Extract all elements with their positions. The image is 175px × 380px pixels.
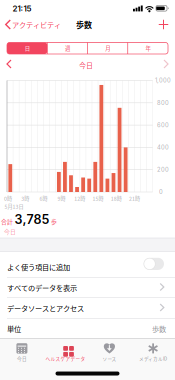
- staticText: 600: [157, 122, 169, 129]
- staticText: データソースとアクセス: [7, 303, 84, 313]
- button[interactable]: よく使う項目に追加: [0, 254, 175, 280]
- staticText: 0: [159, 188, 163, 195]
- button[interactable]: ヘルスケアデータ: [40, 340, 92, 364]
- staticText: 400: [157, 144, 169, 151]
- staticText: 18時: [111, 195, 122, 202]
- staticText: ソース: [102, 355, 116, 362]
- button[interactable]: メディカルID: [127, 340, 175, 364]
- button[interactable]: 単位: [0, 318, 175, 339]
- staticText: 6時: [39, 195, 47, 202]
- staticText: メディカルID: [139, 355, 167, 362]
- staticText: 歩数: [152, 323, 166, 334]
- staticText: よく使う項目に追加: [7, 262, 70, 272]
- staticText: 年: [145, 44, 150, 52]
- button[interactable]: ソース: [83, 340, 135, 364]
- staticText: 0時: [4, 195, 12, 202]
- staticText: 3時: [21, 195, 29, 202]
- staticText: 月: [105, 44, 110, 52]
- staticText: 21時: [129, 195, 140, 202]
- button[interactable]: 日: [7, 42, 47, 54]
- staticText: 200: [157, 166, 169, 173]
- staticText: 12時: [74, 195, 85, 202]
- staticText: 今日: [79, 60, 93, 70]
- staticText: ヘルスケアデータ: [46, 355, 86, 362]
- staticText: 合計: [1, 217, 13, 226]
- staticText: 今日: [17, 355, 27, 362]
- staticText: 21:15: [12, 4, 31, 13]
- staticText: すべてのデータを表示: [7, 282, 77, 293]
- button[interactable]: データソースとアクセス: [0, 298, 175, 318]
- staticText: 歩数: [76, 19, 92, 30]
- staticText: アクティビティ: [12, 19, 61, 30]
- staticText: 今日: [4, 227, 16, 236]
- button[interactable]: 前日: [4, 59, 16, 71]
- button[interactable]: 今日: [0, 340, 48, 364]
- staticText: 800: [157, 99, 169, 106]
- button[interactable]: すべてのデータを表示: [0, 277, 175, 298]
- button[interactable]: 週: [47, 42, 87, 54]
- button[interactable]: 年: [128, 42, 168, 54]
- button[interactable]: アクティビティに戻る: [4, 17, 72, 31]
- staticText: 単位: [7, 323, 21, 334]
- staticText: 日: [25, 44, 30, 52]
- staticText: 9時: [58, 195, 66, 202]
- staticText: 15時: [92, 195, 103, 202]
- button[interactable]: 月: [87, 42, 128, 54]
- staticText: 歩: [51, 217, 57, 226]
- button[interactable]: データを追加: [159, 20, 168, 29]
- button[interactable]: 翌日: [159, 59, 171, 71]
- staticText: 週: [65, 44, 70, 52]
- staticText: 5月13日: [4, 203, 23, 210]
- staticText: 3,785: [14, 212, 49, 227]
- staticText: 1,000: [155, 77, 171, 84]
